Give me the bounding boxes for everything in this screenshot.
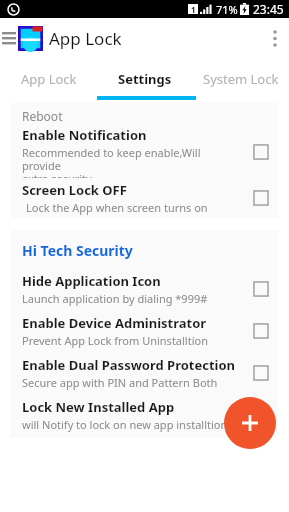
button[interactable]: Enable Notification	[11, 126, 278, 178]
staticText: Lock New Installed App	[22, 398, 175, 416]
staticText: Launch application by dialing *999#	[22, 291, 208, 306]
staticText: 71%	[216, 2, 238, 17]
button[interactable]: Enabled, checked	[250, 404, 272, 426]
staticText: 23:45	[253, 1, 284, 17]
staticText: Secure app with PIN and Pattern Both	[22, 375, 218, 390]
staticText: Screen Lock OFF	[22, 181, 127, 199]
staticText: App Lock	[49, 27, 122, 50]
button[interactable]: Disabled, unchecked	[250, 187, 272, 209]
button[interactable]: Disabled, unchecked	[250, 141, 272, 163]
button[interactable]: Lock New Installed App	[11, 394, 278, 436]
staticText: Settings	[118, 70, 172, 88]
staticText: System Lock	[203, 70, 279, 88]
button[interactable]: Add application to lock	[224, 397, 276, 449]
button[interactable]: Open navigation drawer	[0, 22, 17, 54]
button[interactable]: Disabled, unchecked	[250, 278, 272, 300]
staticText: App Lock	[21, 70, 77, 88]
staticText: Hide Application Icon	[22, 272, 161, 290]
staticText: Lock the App when screen turns on	[26, 200, 208, 215]
staticText: Prevent App Lock from Uninstalltion	[22, 333, 208, 348]
staticText: Recommended to keep enable,Will provide …	[22, 145, 240, 178]
staticText: Enable Device Administrator	[22, 314, 207, 332]
button[interactable]: Disabled, unchecked	[250, 362, 272, 384]
button[interactable]: Disabled, unchecked	[250, 320, 272, 342]
staticText: 1	[191, 4, 196, 14]
staticText: will Notify to lock on new app installti…	[22, 417, 228, 432]
button[interactable]: Screen Lock OFF	[11, 178, 278, 218]
button[interactable]: Hide Application Icon	[11, 268, 278, 310]
button[interactable]: System Lock	[193, 58, 289, 100]
button[interactable]: Enable Device Administrator	[11, 310, 278, 352]
button[interactable]: Enable Dual Password Protection	[11, 352, 278, 394]
staticText: Enable Dual Password Protection	[22, 356, 236, 374]
button[interactable]: App Lock	[0, 58, 97, 100]
staticText: Hi Tech Security	[22, 241, 133, 260]
staticText: Reboot	[22, 108, 63, 124]
button[interactable]: Settings	[97, 58, 193, 100]
staticText: Enable Notification	[22, 126, 147, 144]
button[interactable]: More options	[261, 20, 289, 56]
